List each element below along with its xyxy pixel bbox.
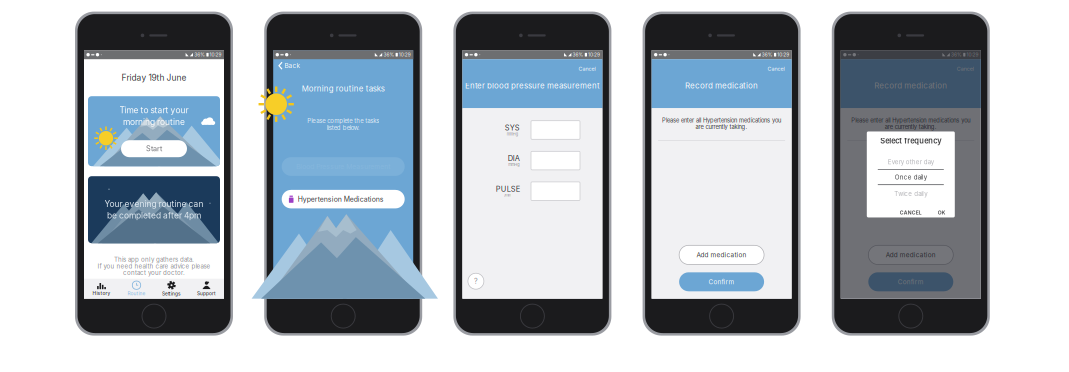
staticText: listed below. [327, 124, 360, 131]
staticText: Friday 19th June [121, 73, 186, 83]
staticText: Twice daily [894, 190, 927, 197]
staticText: Cancel [768, 65, 785, 72]
staticText: 36% [762, 52, 773, 58]
staticText: morning routine [123, 117, 185, 127]
button[interactable]: Settings [154, 279, 189, 299]
staticText: Record medication [685, 81, 758, 91]
staticText: 10:29 [588, 52, 600, 58]
staticText: Start [146, 144, 162, 153]
button[interactable]: Confirm [868, 272, 953, 291]
staticText: Cancel [957, 65, 974, 72]
button[interactable]: Support [189, 279, 224, 299]
button[interactable]: Cancel [570, 59, 602, 75]
button[interactable]: CANCEL [896, 205, 926, 220]
staticText: Cancel [578, 65, 595, 72]
button[interactable]: Add medication [868, 245, 953, 264]
button[interactable]: Back [273, 59, 413, 72]
staticText: /min [504, 193, 511, 198]
staticText: be completed after 4pm [107, 210, 201, 221]
staticText: DIA [508, 154, 520, 163]
staticText: SYS [505, 123, 520, 132]
staticText: 10:29 [399, 52, 411, 58]
button[interactable]: Add medication [679, 245, 764, 264]
staticText: 36% [194, 52, 205, 58]
button[interactable]: Start [121, 140, 187, 157]
button[interactable]: Hypertension Medications [282, 190, 405, 208]
staticText: mmHg [507, 132, 518, 136]
button[interactable]: History [84, 279, 119, 299]
button[interactable]: Help [467, 272, 485, 290]
button[interactable]: Confirm [679, 272, 764, 291]
button[interactable]: Routine [119, 279, 154, 299]
staticText: ? [474, 277, 478, 285]
staticText: 10:29 [966, 52, 978, 58]
button[interactable]: Cancel [760, 59, 792, 75]
staticText: Please enter all Hypertension medication… [662, 117, 781, 124]
staticText: Time to start your [119, 105, 188, 115]
staticText: Add medication [697, 251, 747, 259]
staticText: Confirm [898, 278, 924, 286]
staticText: 36% [383, 52, 394, 58]
staticText: Add medication [886, 251, 936, 259]
button[interactable]: Cancel [949, 59, 981, 75]
staticText: Hypertension Medications [298, 195, 384, 203]
staticText: 36% [573, 52, 584, 58]
staticText: 10:29 [210, 52, 222, 58]
staticText: 10:29 [777, 52, 789, 58]
staticText: Please enter all Hypertension medication… [851, 117, 970, 124]
staticText: Your evening routine can [104, 199, 203, 209]
staticText: History [92, 290, 110, 296]
staticText: Please complete the tasks [307, 117, 379, 124]
staticText: 36% [951, 52, 962, 58]
staticText: Confirm [709, 278, 735, 286]
staticText: Support [197, 291, 216, 296]
staticText: Every other day [888, 158, 934, 166]
staticText: Once daily [895, 173, 927, 181]
staticText: Morning routine tasks [302, 84, 385, 93]
staticText: Enter blood pressure measurement [465, 81, 600, 90]
staticText: If you need health care advice please [97, 262, 210, 270]
staticText: Back [284, 62, 300, 69]
button[interactable]: OK [926, 205, 950, 220]
staticText: contact your doctor. [123, 269, 185, 276]
staticText: Routine [127, 291, 145, 296]
staticText: are currently taking. [696, 123, 748, 130]
staticText: This app only gathers data. [114, 256, 194, 263]
staticText: Select frequency [880, 136, 941, 145]
staticText: Settings [162, 291, 181, 297]
staticText: CANCEL [900, 209, 922, 216]
staticText: OK [938, 209, 946, 216]
staticText: Record medication [874, 81, 947, 91]
staticText: mmHg [508, 162, 519, 167]
staticText: PULSE [496, 184, 520, 193]
staticText: are currently taking. [885, 123, 937, 130]
button[interactable]: Blood Pressure Measurement [282, 157, 405, 176]
